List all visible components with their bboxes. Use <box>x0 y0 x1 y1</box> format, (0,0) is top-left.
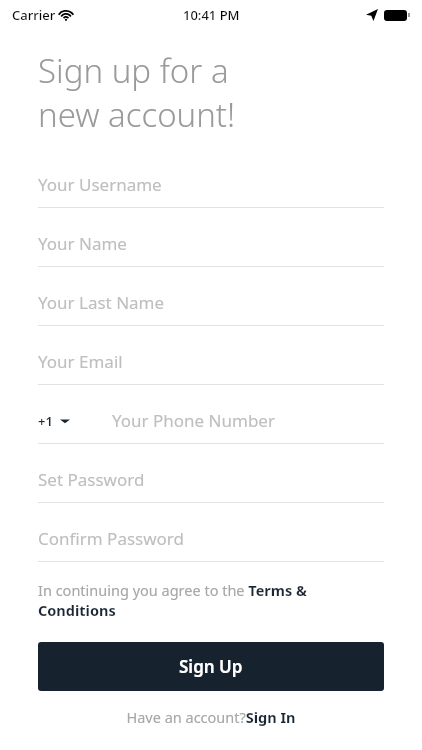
staticText: Your Last Name <box>38 291 165 314</box>
button[interactable]: In continuing you agree to the Terms & C… <box>38 580 384 620</box>
button[interactable]: +1 <box>38 412 70 430</box>
staticText: Carrier <box>12 6 56 24</box>
staticText: Your Name <box>38 232 127 255</box>
staticText: Confirm Password <box>38 527 184 550</box>
button[interactable]: Sign Up <box>38 642 384 691</box>
staticText: Set Password <box>38 468 145 491</box>
staticText: +1 <box>38 412 53 430</box>
staticText: Your Username <box>38 173 162 196</box>
staticText: Your Phone Number <box>112 409 275 432</box>
staticText: Sign Up <box>179 655 243 678</box>
staticText: 10:41 PM <box>183 6 240 24</box>
staticText: Sign up for a new account! <box>38 48 236 136</box>
staticText: Your Email <box>38 350 123 373</box>
button[interactable]: Have an account?Sign In <box>126 707 296 727</box>
